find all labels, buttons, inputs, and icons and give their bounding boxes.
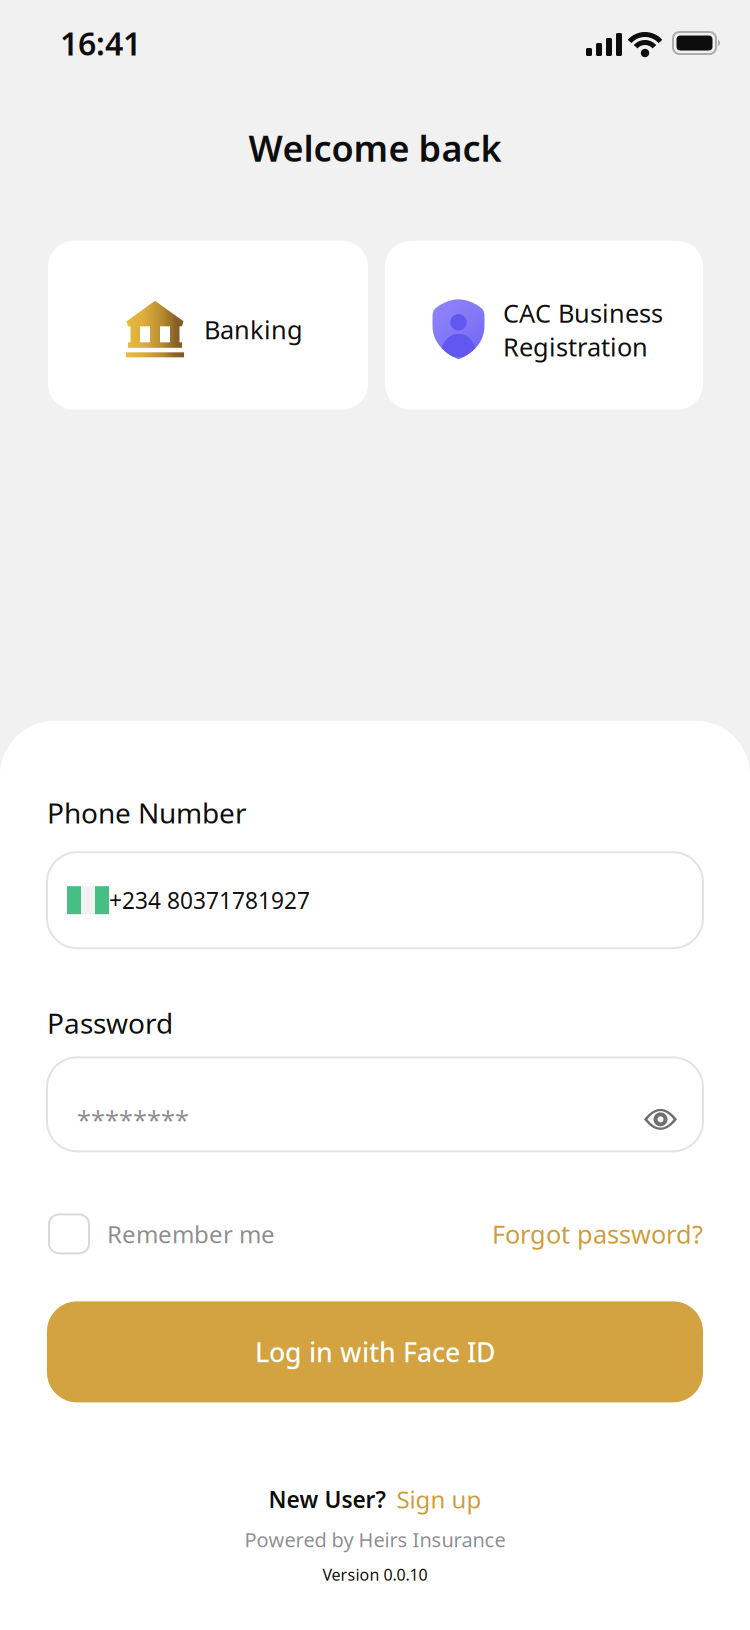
staticText: 16:41 — [60, 22, 141, 64]
button[interactable]: Banking — [48, 241, 368, 410]
staticText: +234 80371781927 — [109, 885, 310, 915]
staticText: ******** — [77, 1102, 189, 1136]
staticText: Banking — [204, 312, 303, 346]
staticText: Powered by Heirs Insurance — [244, 1526, 505, 1553]
staticText: Forgot password? — [492, 1217, 703, 1251]
staticText: Remember me — [107, 1218, 275, 1250]
button[interactable]: Remember me — [47, 1214, 275, 1253]
staticText: Log in with Face ID — [255, 1334, 495, 1370]
staticText: Welcome back — [248, 124, 501, 172]
button[interactable]: Forgot password? — [492, 1217, 703, 1251]
button[interactable]: Log in with Face ID — [47, 1301, 703, 1402]
staticText: Sign up — [396, 1483, 481, 1515]
button[interactable]: Show password — [644, 1077, 677, 1131]
staticText: CAC Business — [503, 296, 663, 330]
staticText: Password — [47, 1004, 173, 1041]
button[interactable]: Sign up — [396, 1483, 481, 1515]
staticText: Registration — [503, 330, 648, 363]
staticText: Phone Number — [47, 794, 247, 831]
button[interactable]: CAC Business — [385, 241, 703, 410]
staticText: Version 0.0.10 — [322, 1564, 427, 1585]
staticText: New User? — [268, 1484, 385, 1514]
